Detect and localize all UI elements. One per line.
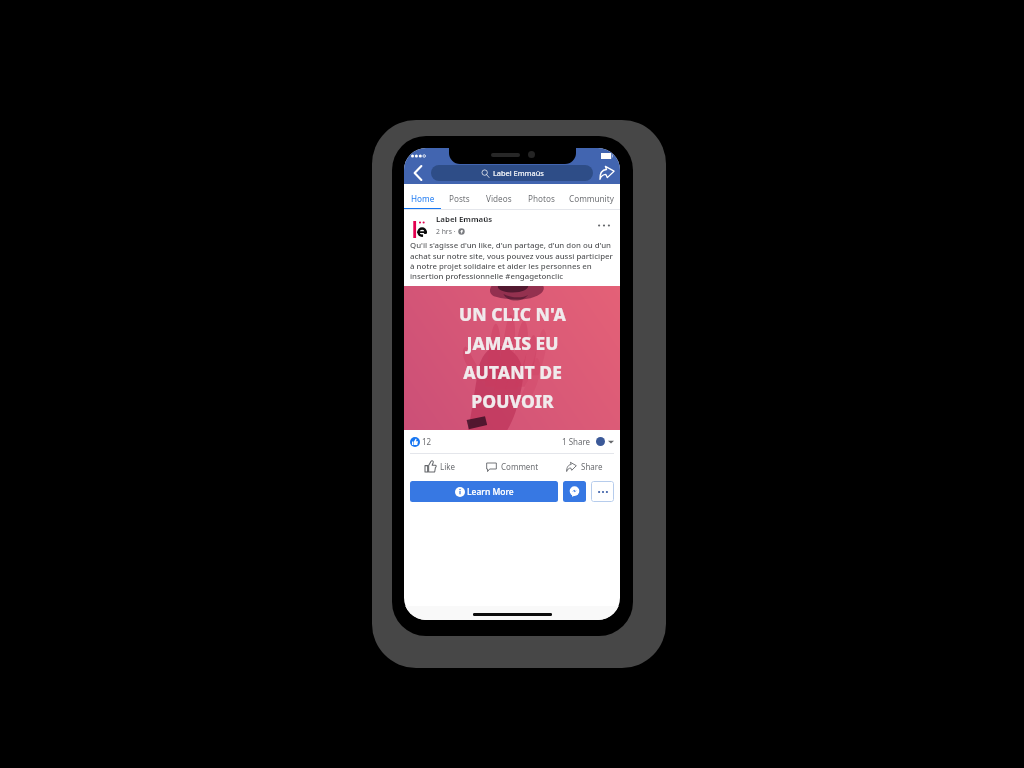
staticText: POUVOIR bbox=[471, 389, 554, 413]
staticText: Label Emmaüs bbox=[493, 168, 544, 178]
staticText: Videos bbox=[486, 193, 512, 204]
staticText: Label Emmaüs bbox=[436, 214, 493, 225]
staticText: 12 bbox=[422, 436, 432, 447]
staticText: Home bbox=[411, 193, 435, 204]
button[interactable]: Posts bbox=[441, 184, 478, 210]
staticText: Share bbox=[581, 461, 603, 472]
staticText: Community bbox=[569, 193, 614, 204]
staticText: JAMAIS EU bbox=[466, 331, 559, 355]
button[interactable]: Share bbox=[596, 162, 618, 184]
staticText: 1 Share bbox=[562, 436, 591, 447]
button[interactable]: Home bbox=[404, 184, 441, 210]
button[interactable]: Learn More bbox=[410, 481, 558, 502]
staticText: AUTANT DE bbox=[463, 360, 562, 384]
button[interactable]: Label Emmaüs bbox=[431, 165, 593, 181]
button[interactable]: Videos bbox=[478, 184, 520, 210]
staticText: Posts bbox=[449, 193, 470, 204]
staticText: Comment bbox=[501, 461, 539, 472]
button[interactable]: More bbox=[591, 481, 614, 502]
button[interactable]: Community bbox=[562, 184, 620, 210]
button[interactable]: Comment bbox=[476, 461, 548, 472]
staticText: Learn More bbox=[467, 486, 514, 498]
button[interactable]: Back bbox=[407, 162, 429, 184]
button[interactable]: Share bbox=[548, 461, 620, 472]
staticText: UN CLIC N'A bbox=[459, 302, 566, 326]
staticText: Qu'il s'agisse d'un like, d'un partage, … bbox=[410, 240, 614, 281]
button[interactable]: Photos bbox=[520, 184, 562, 210]
staticText: Photos bbox=[528, 193, 555, 204]
button[interactable]: Like bbox=[404, 461, 476, 472]
staticText: Like bbox=[440, 461, 456, 472]
button[interactable]: More options bbox=[595, 216, 613, 234]
button[interactable]: Messenger bbox=[563, 481, 586, 502]
staticText: 2 hrs · bbox=[436, 227, 458, 236]
